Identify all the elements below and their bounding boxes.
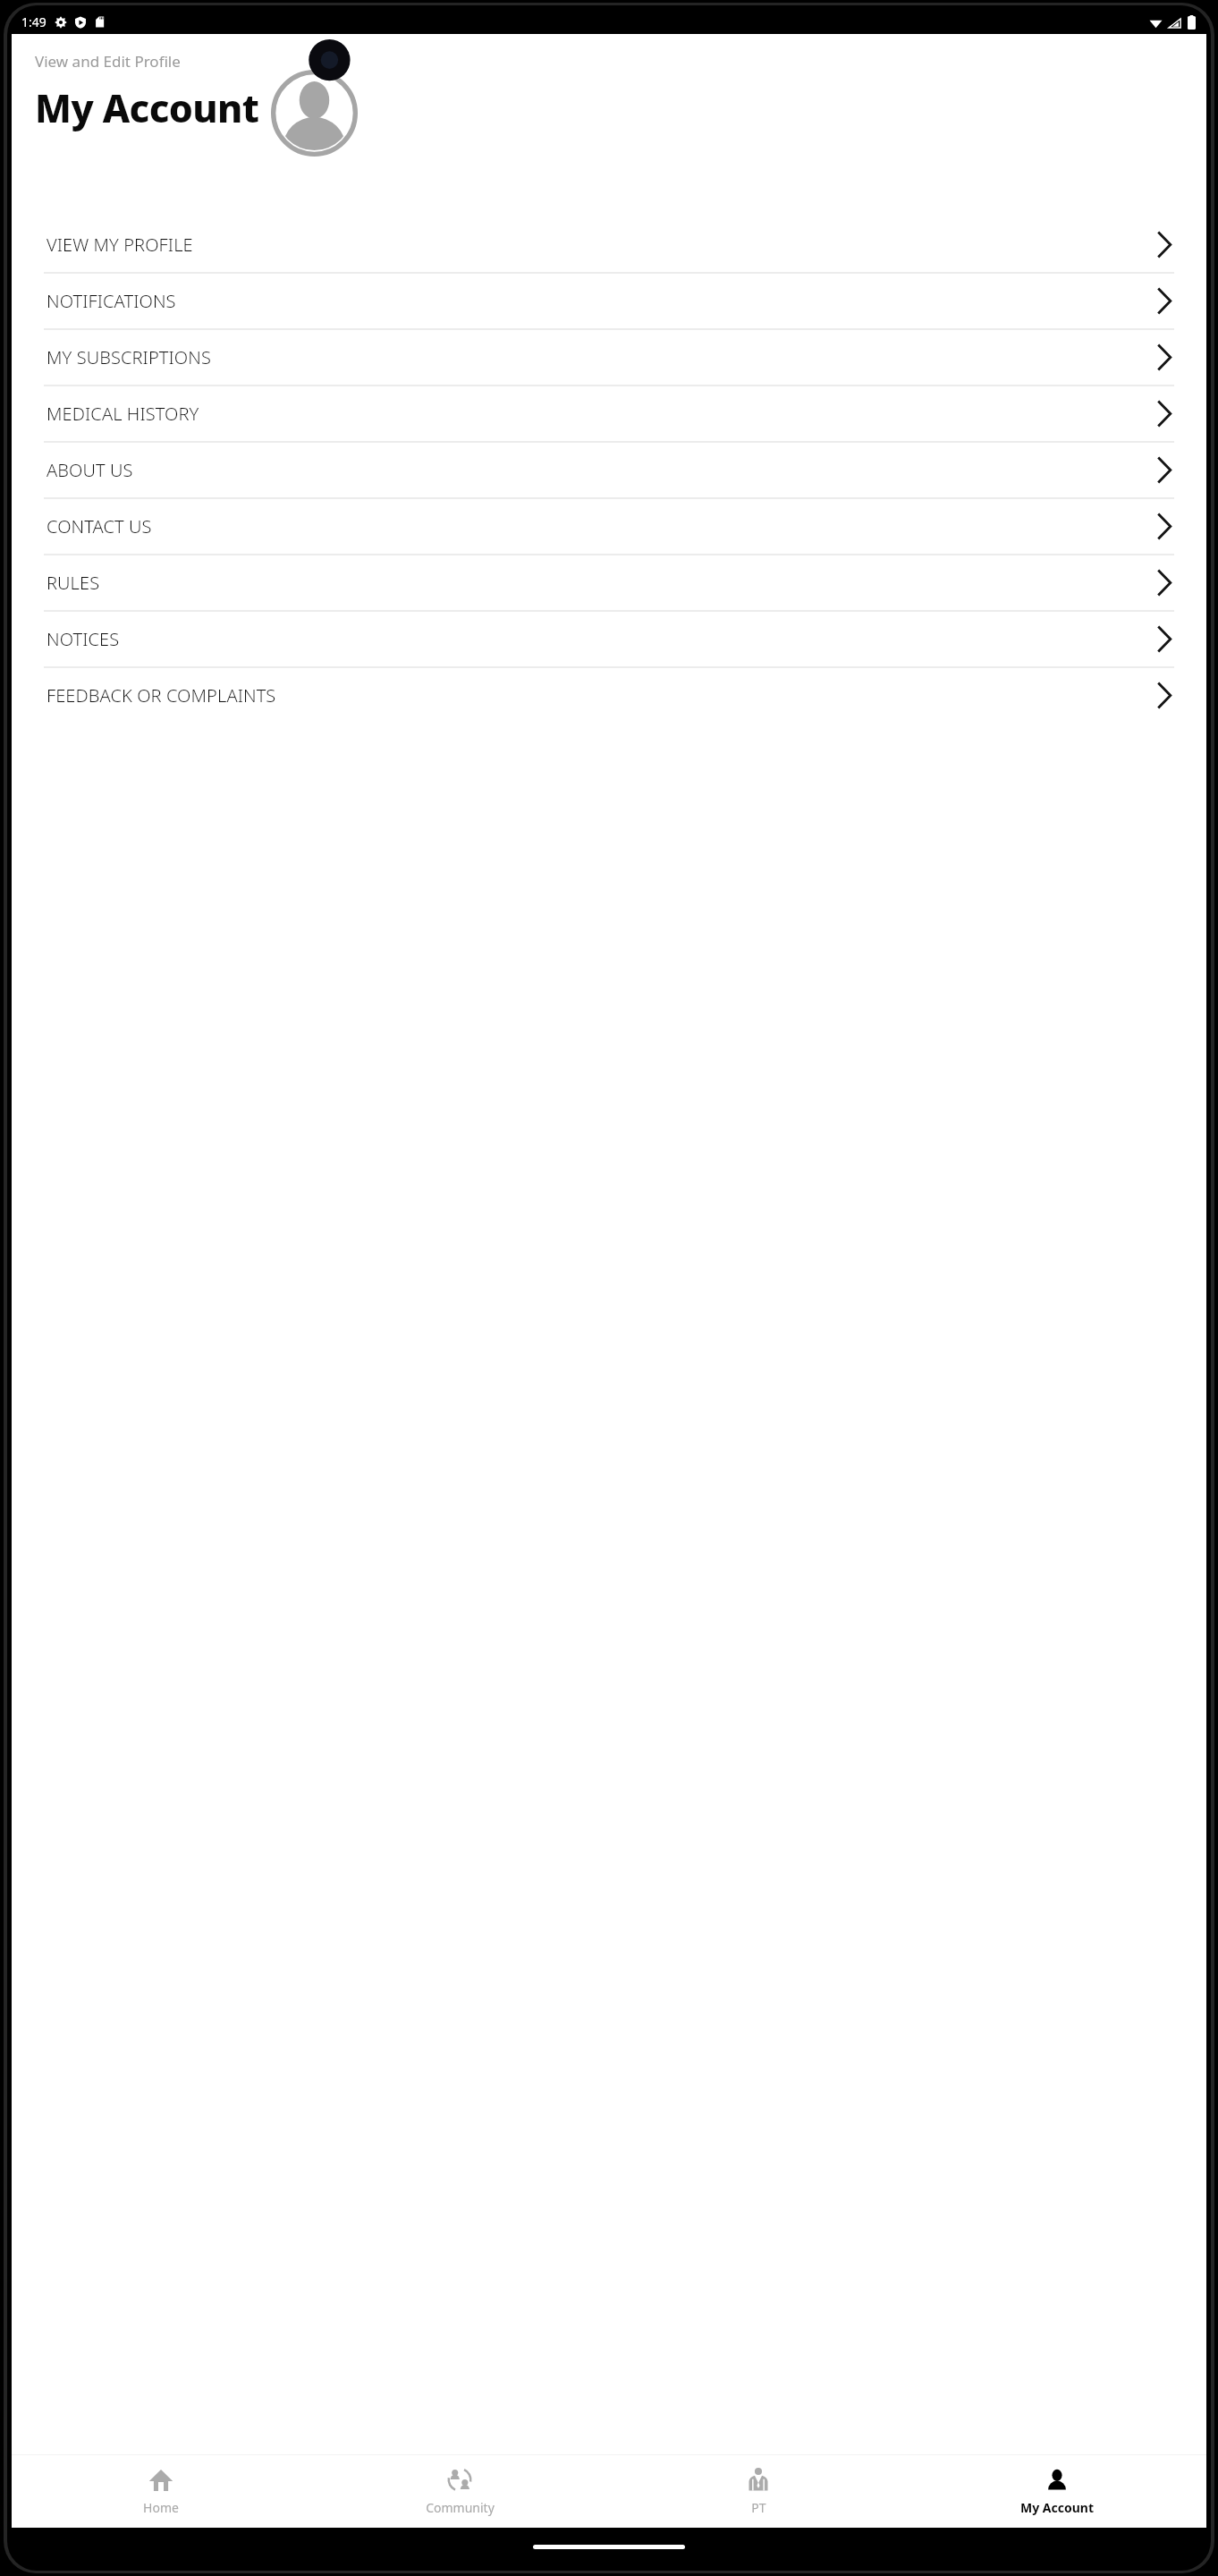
button[interactable]: NOTICES [12,612,1206,668]
staticText: PT [751,2499,766,2516]
button[interactable]: RULES [12,555,1206,612]
button[interactable]: FEEDBACK OR COMPLAINTS [12,668,1206,723]
button[interactable]: PT [609,2455,908,2528]
staticText: VIEW MY PROFILE [47,233,1156,257]
button[interactable]: NOTIFICATIONS [12,274,1206,330]
staticText: ABOUT US [47,458,1156,482]
staticText: 1:49 [21,13,47,30]
button[interactable]: MY SUBSCRIPTIONS [12,330,1206,386]
button[interactable]: MEDICAL HISTORY [12,386,1206,443]
button[interactable]: VIEW MY PROFILE [12,217,1206,274]
staticText: CONTACT US [47,514,1156,538]
staticText: MY SUBSCRIPTIONS [47,345,1156,369]
staticText: MEDICAL HISTORY [47,402,1156,426]
button[interactable]: CONTACT US [12,499,1206,555]
staticText: My Account [1020,2499,1094,2516]
staticText: Community [426,2499,495,2516]
staticText: View and Edit Profile [35,51,181,72]
staticText: RULES [47,571,1156,595]
button[interactable]: ABOUT US [12,443,1206,499]
staticText: NOTICES [47,627,1156,651]
staticText: My Account [35,81,259,134]
button[interactable]: My Account [908,2455,1206,2528]
staticText: Home [143,2499,179,2516]
button[interactable]: Community [310,2455,609,2528]
button[interactable]: Home [12,2455,310,2528]
staticText: NOTIFICATIONS [47,289,1156,313]
button[interactable]: Profile photo [271,70,358,157]
staticText: FEEDBACK OR COMPLAINTS [47,683,1156,708]
